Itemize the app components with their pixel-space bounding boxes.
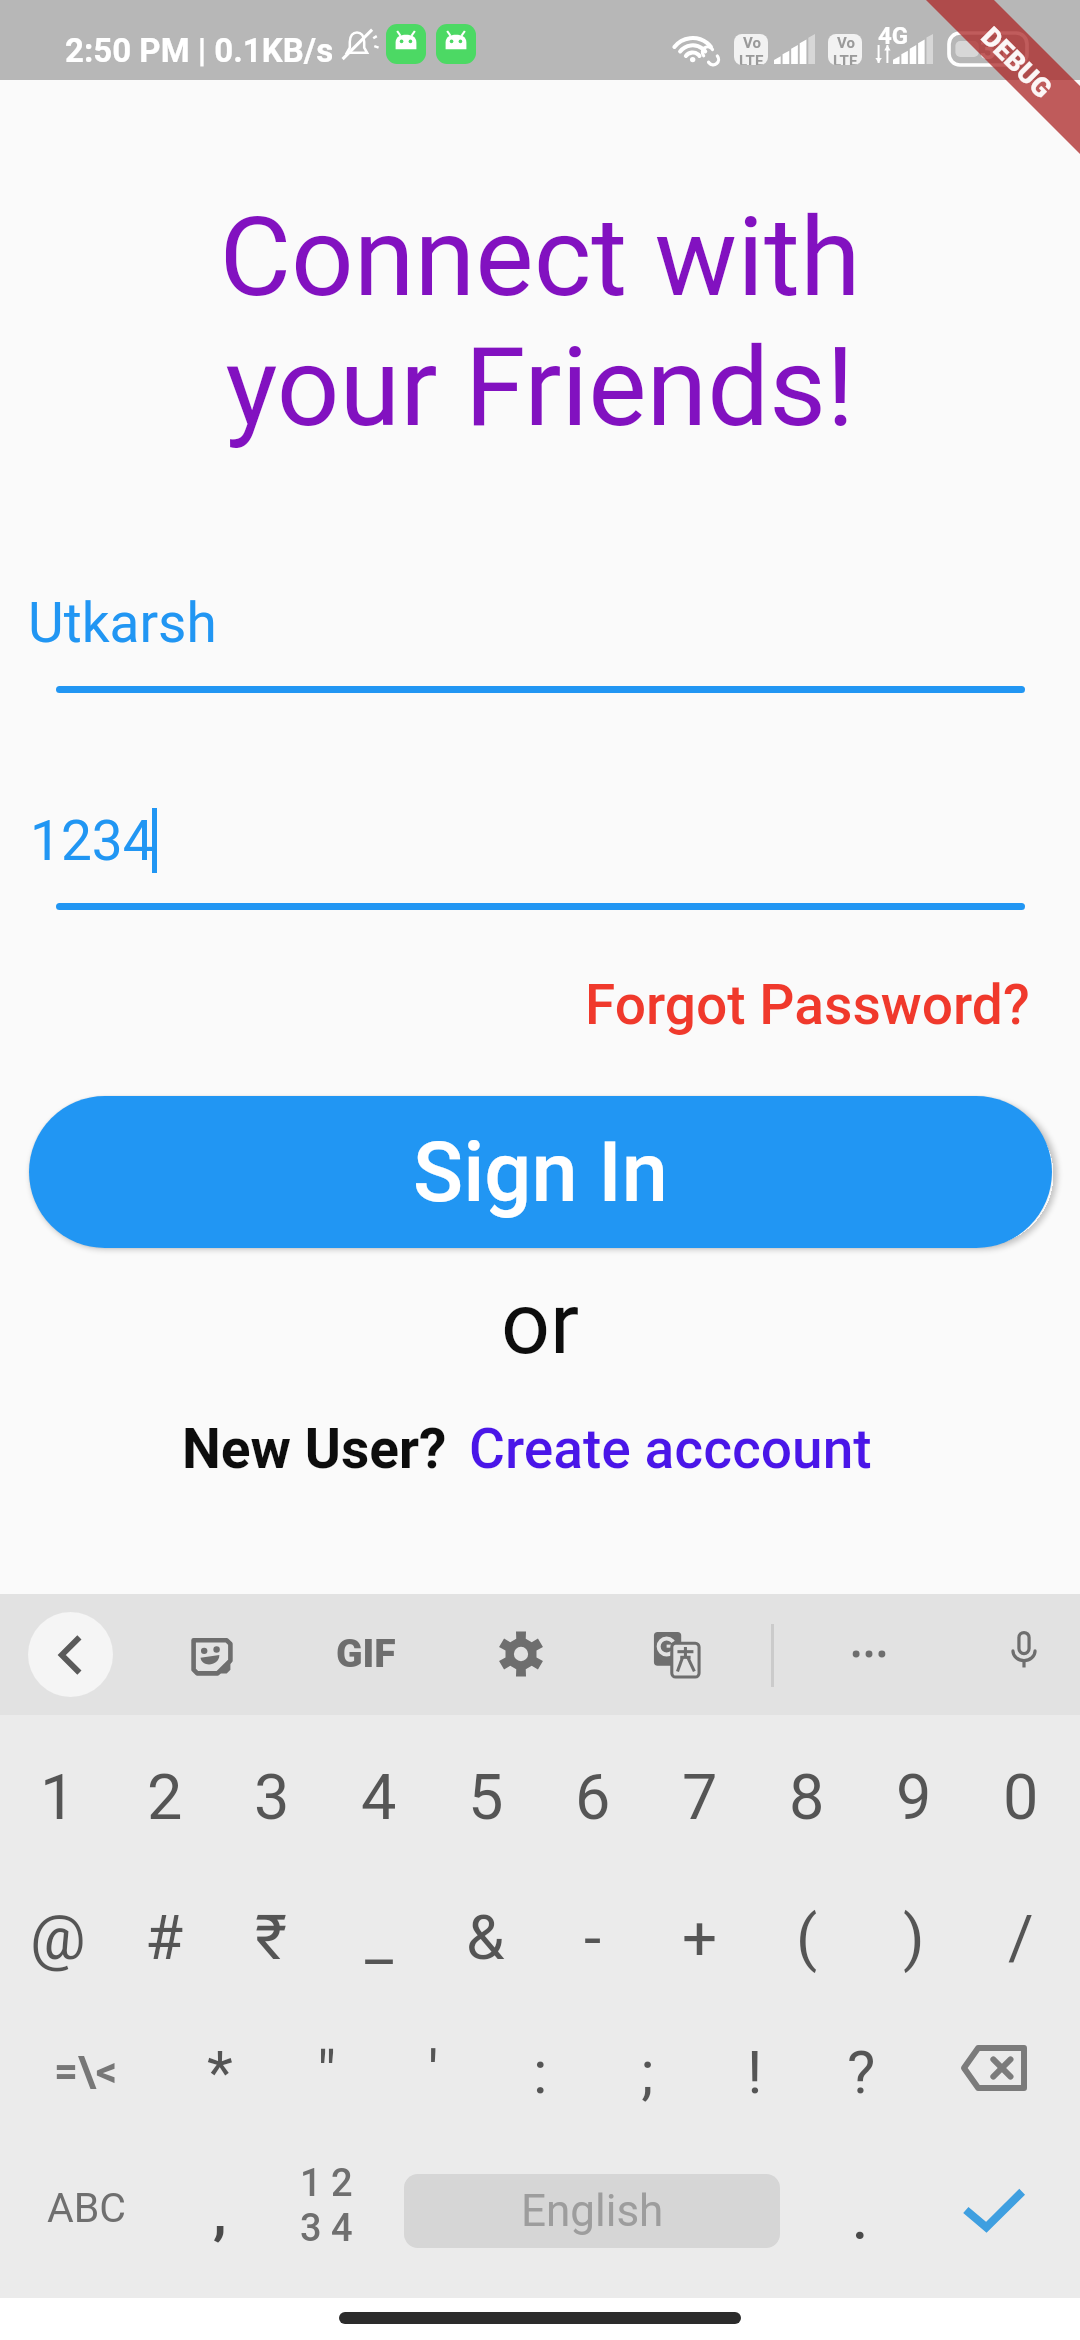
staticText: LTE	[833, 52, 858, 65]
staticText: 3	[254, 1761, 290, 1835]
staticText: Create acccount	[469, 1417, 872, 1481]
button[interactable]	[908, 1995, 1080, 2140]
button[interactable]: 6	[539, 1725, 646, 1870]
button[interactable]: Create acccount	[469, 1417, 872, 1481]
staticText: DEBUG	[974, 21, 1058, 105]
button[interactable]: 7	[646, 1725, 753, 1870]
button[interactable]: -	[539, 1863, 646, 2011]
staticText: 4G	[878, 22, 909, 50]
staticText: 6	[575, 1761, 611, 1835]
staticText: or	[0, 1273, 1080, 1374]
button[interactable]: @	[4, 1863, 111, 2011]
staticText: 9	[896, 1761, 932, 1835]
button[interactable]: English	[404, 2174, 780, 2248]
staticText: Vo	[837, 34, 855, 52]
button[interactable]: ABC	[0, 2135, 172, 2280]
staticText: LTE	[739, 52, 764, 65]
button[interactable]: /	[967, 1863, 1074, 2011]
staticText: English	[521, 2185, 664, 2237]
staticText: /	[1008, 1901, 1034, 1974]
staticText: )	[903, 1901, 925, 1974]
button[interactable]: 5	[432, 1725, 539, 1870]
button[interactable]: '	[380, 1999, 487, 2144]
button[interactable]: 1	[4, 1725, 111, 1870]
staticText: 1 2	[300, 2161, 353, 2206]
staticText: @	[30, 1901, 86, 1974]
staticText: #	[145, 1901, 184, 1974]
button[interactable]: Translate	[639, 1617, 714, 1692]
button[interactable]: Back	[28, 1612, 113, 1697]
staticText: 31	[980, 33, 1013, 65]
button[interactable]: Settings	[484, 1617, 558, 1691]
staticText: ;	[641, 2037, 654, 2107]
button[interactable]: ;	[594, 1999, 701, 2144]
button[interactable]: ?	[808, 1999, 915, 2144]
staticText: -	[584, 1901, 602, 1974]
button[interactable]: *	[166, 1999, 273, 2144]
staticText: Utkarsh	[28, 591, 217, 655]
staticText: 7	[682, 1761, 718, 1835]
button[interactable]: Stickers	[175, 1618, 249, 1692]
button[interactable]: !	[701, 1999, 808, 2144]
staticText: 1	[40, 1761, 76, 1835]
staticText: !	[747, 2037, 763, 2107]
button[interactable]: =\<	[0, 1999, 172, 2144]
staticText: (	[796, 1901, 818, 1974]
staticText: Connect with your Friends!	[0, 193, 1080, 452]
staticText: "	[317, 2037, 337, 2107]
button[interactable]: )	[860, 1863, 967, 2011]
staticText: .	[853, 2194, 867, 2250]
staticText: ,	[213, 2181, 227, 2247]
button[interactable]: :	[487, 1999, 594, 2144]
button[interactable]: +	[646, 1863, 753, 2011]
button[interactable]: GIF	[330, 1621, 402, 1687]
staticText: 3 4	[300, 2206, 353, 2251]
staticText: 1234	[30, 809, 154, 873]
button[interactable]	[908, 2137, 1080, 2282]
button[interactable]: 0	[967, 1725, 1074, 1870]
button[interactable]: 1 2	[273, 2135, 380, 2280]
staticText: ₹	[255, 1901, 288, 1974]
button[interactable]: &	[432, 1863, 539, 2011]
button[interactable]: 4	[325, 1725, 432, 1870]
staticText: 4	[361, 1761, 397, 1835]
staticText: New User?	[182, 1417, 447, 1481]
button[interactable]: Sign In	[29, 1096, 1052, 1248]
button[interactable]: ,	[166, 2135, 273, 2280]
staticText: 0	[1003, 1761, 1039, 1835]
button[interactable]: ₹	[218, 1863, 325, 2011]
staticText: GIF	[336, 1631, 396, 1677]
staticText: '	[428, 2037, 439, 2107]
button[interactable]: "	[273, 1999, 380, 2144]
staticText: _	[365, 1901, 393, 1974]
staticText: Vo	[743, 34, 761, 52]
staticText: +	[682, 1901, 718, 1974]
staticText: ?	[847, 2037, 876, 2107]
staticText: &	[466, 1901, 505, 1974]
button[interactable]: .	[806, 2135, 913, 2280]
button[interactable]: 2	[111, 1725, 218, 1870]
button[interactable]: Forgot Password?	[585, 973, 1030, 1037]
staticText: Forgot Password?	[585, 973, 1030, 1037]
staticText: 8	[789, 1761, 825, 1835]
button[interactable]: #	[111, 1863, 218, 2011]
staticText: *	[207, 2037, 233, 2107]
staticText: 2	[147, 1761, 183, 1835]
staticText: 2:50 PM | 0.1KB/s	[65, 31, 334, 70]
staticText: Sign In	[413, 1124, 668, 1221]
staticText: 5	[468, 1761, 504, 1835]
button[interactable]: 9	[860, 1725, 967, 1870]
button[interactable]: _	[325, 1863, 432, 2011]
staticText: =\<	[54, 2047, 118, 2096]
button[interactable]: 8	[753, 1725, 860, 1870]
button[interactable]: (	[753, 1863, 860, 2011]
staticText: :	[533, 2037, 548, 2107]
button[interactable]: 3	[218, 1725, 325, 1870]
staticText: ABC	[47, 2184, 126, 2232]
button[interactable]: More	[832, 1617, 906, 1691]
button[interactable]: Voice input	[987, 1613, 1061, 1687]
